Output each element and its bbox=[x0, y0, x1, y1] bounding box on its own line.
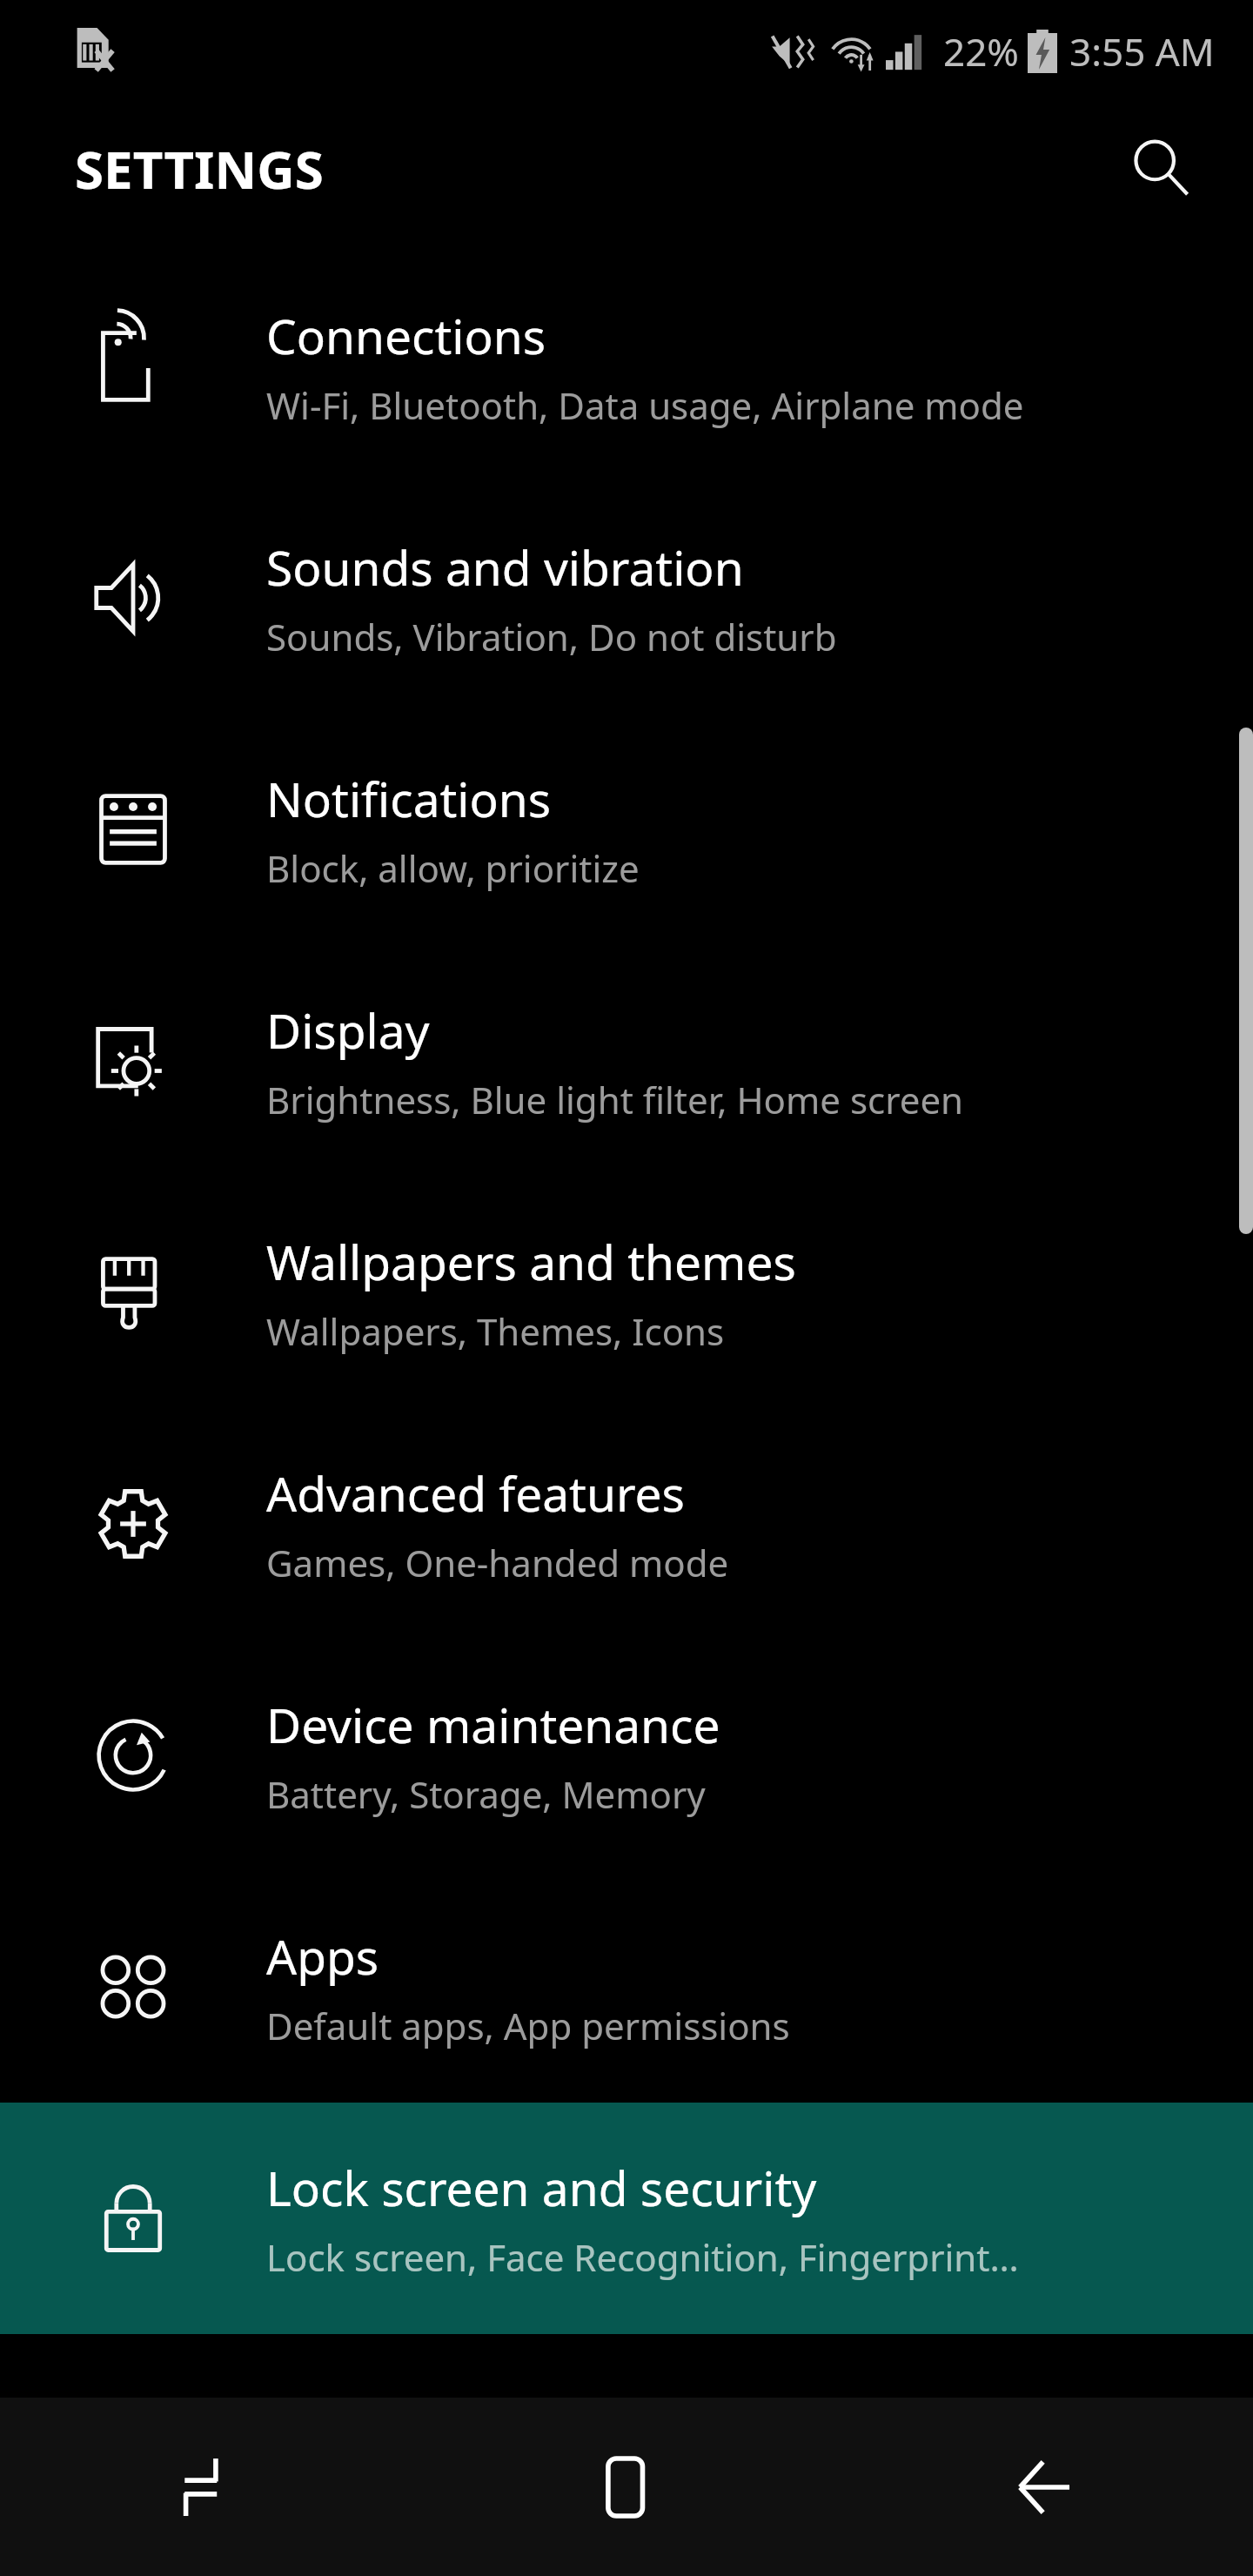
staticText: Wallpapers, Themes, Icons bbox=[266, 1306, 725, 1356]
staticText: Games, One-handed mode bbox=[266, 1538, 729, 1587]
staticText: Default apps, App permissions bbox=[266, 2001, 790, 2050]
staticText: Samsung Cloud, Backup and restore bbox=[266, 2464, 888, 2513]
staticText: 3:55 AM bbox=[1069, 25, 1215, 77]
button[interactable]: Back bbox=[835, 2398, 1253, 2576]
staticText: Connections bbox=[266, 303, 546, 368]
staticText: Apps bbox=[266, 1923, 379, 1989]
staticText: Battery, Storage, Memory bbox=[266, 1769, 706, 1819]
button[interactable]: Wallpapers and themes bbox=[0, 1177, 1253, 1408]
staticText: Wi-Fi, Bluetooth, Data usage, Airplane m… bbox=[266, 380, 1024, 430]
button[interactable]: Recent apps bbox=[0, 2398, 418, 2576]
button[interactable]: Cloud and accounts bbox=[0, 2334, 1253, 2566]
button[interactable]: Display bbox=[0, 945, 1253, 1177]
staticText: Wallpapers and themes bbox=[266, 1229, 796, 1294]
button[interactable]: Search bbox=[1109, 117, 1213, 221]
staticText: Lock screen, Face Recognition, Fingerpri… bbox=[266, 2232, 1019, 2282]
staticText: Sounds, Vibration, Do not disturb bbox=[266, 612, 837, 661]
button[interactable]: Home bbox=[418, 2398, 835, 2576]
button[interactable]: Device maintenance bbox=[0, 1640, 1253, 1871]
button[interactable]: Connections bbox=[0, 235, 1253, 482]
button[interactable]: Lock screen and security bbox=[0, 2103, 1253, 2334]
staticText: Cloud and accounts bbox=[266, 2386, 709, 2452]
staticText: 22% bbox=[943, 25, 1019, 77]
staticText: SETTINGS bbox=[75, 133, 324, 205]
staticText: Block, allow, prioritize bbox=[266, 843, 640, 893]
staticText: Notifications bbox=[266, 766, 552, 831]
staticText: Sounds and vibration bbox=[266, 534, 744, 600]
staticText: Device maintenance bbox=[266, 1692, 720, 1757]
button[interactable]: Advanced features bbox=[0, 1408, 1253, 1640]
staticText: Display bbox=[266, 997, 430, 1063]
staticText: Lock screen and security bbox=[266, 2155, 817, 2220]
staticText: Brightness, Blue light filter, Home scre… bbox=[266, 1075, 964, 1124]
button[interactable]: Sounds and vibration bbox=[0, 482, 1253, 714]
button[interactable]: Apps bbox=[0, 1871, 1253, 2103]
staticText: Advanced features bbox=[266, 1460, 685, 1526]
button[interactable]: Notifications bbox=[0, 714, 1253, 945]
